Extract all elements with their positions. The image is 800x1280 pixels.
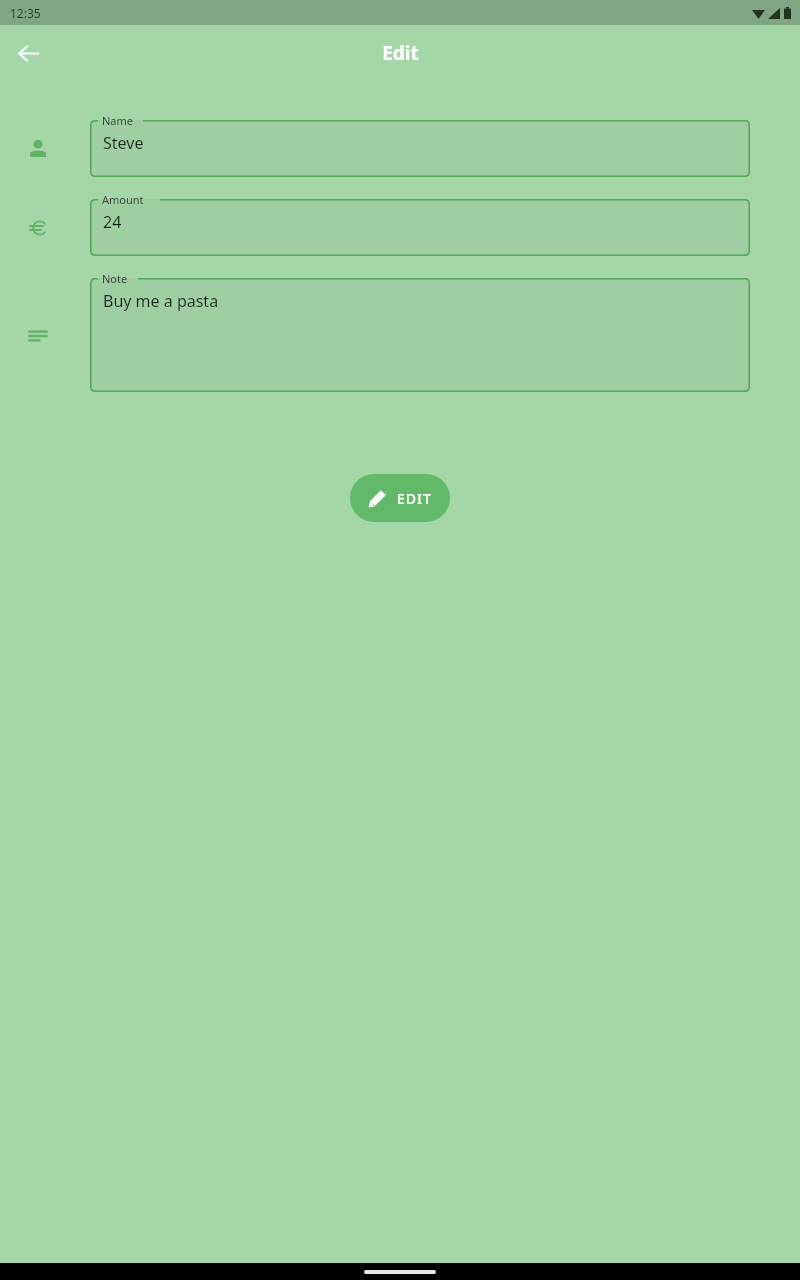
staticText: Steve xyxy=(103,132,144,154)
staticText: Buy me a pasta xyxy=(103,290,219,312)
staticText: EDIT xyxy=(397,489,432,508)
button[interactable]: Back xyxy=(10,35,46,71)
button[interactable]: Amount xyxy=(90,199,750,256)
staticText: 12:35 xyxy=(10,5,41,21)
staticText: Edit xyxy=(382,40,419,66)
staticText: Note xyxy=(102,271,128,286)
button[interactable]: Note xyxy=(90,278,750,392)
button[interactable]: Name xyxy=(90,120,750,177)
staticText: Amount xyxy=(102,192,144,207)
button[interactable]: EDIT xyxy=(350,474,450,522)
staticText: Name xyxy=(102,113,134,128)
staticText: 24 xyxy=(103,211,122,233)
